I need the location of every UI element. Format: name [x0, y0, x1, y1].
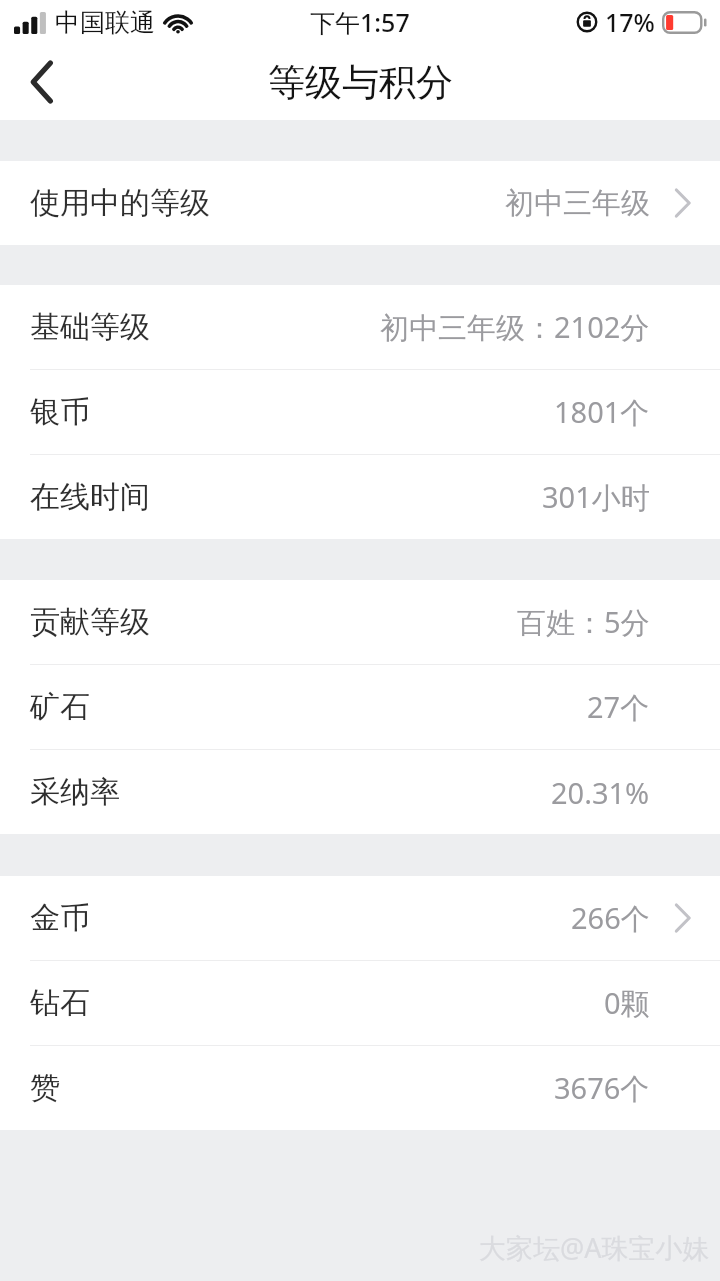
staticText: 银币 [30, 393, 90, 431]
staticText: 下午1:57 [310, 5, 410, 39]
staticText: 金币 [30, 899, 90, 937]
staticText: 矿石 [30, 688, 90, 726]
staticText: 百姓：5分 [517, 602, 650, 642]
button[interactable]: 采纳率 [0, 750, 720, 834]
staticText: 0颗 [604, 983, 650, 1023]
staticText: 赞 [30, 1069, 60, 1107]
staticText: 20.31% [551, 773, 650, 812]
staticText: 27个 [587, 687, 650, 727]
button[interactable]: 基础等级 [0, 285, 720, 369]
button[interactable]: 钻石 [0, 961, 720, 1045]
staticText: 使用中的等级 [30, 184, 210, 222]
button[interactable]: 矿石 [0, 665, 720, 749]
staticText: 301小时 [542, 477, 650, 517]
button[interactable]: Back [8, 48, 76, 116]
staticText: 初中三年级：2102分 [380, 307, 650, 347]
staticText: 3676个 [554, 1068, 650, 1108]
staticText: 钻石 [30, 984, 90, 1022]
button[interactable]: 贡献等级 [0, 580, 720, 664]
staticText: 等级与积分 [268, 59, 453, 106]
staticText: 266个 [571, 898, 650, 938]
button[interactable]: 赞 [0, 1046, 720, 1130]
button[interactable]: 在线时间 [0, 455, 720, 539]
staticText: 17% [605, 5, 655, 39]
button[interactable]: 使用中的等级 [0, 161, 720, 245]
staticText: 在线时间 [30, 478, 150, 516]
staticText: 采纳率 [30, 773, 120, 811]
staticText: 初中三年级 [505, 185, 650, 222]
staticText: 大家坛@A珠宝小妹 [479, 1229, 710, 1266]
button[interactable]: 金币 [0, 876, 720, 960]
staticText: 中国联通 [55, 7, 155, 38]
staticText: 基础等级 [30, 308, 150, 346]
staticText: 1801个 [554, 392, 650, 432]
staticText: 贡献等级 [30, 603, 150, 641]
button[interactable]: 银币 [0, 370, 720, 454]
